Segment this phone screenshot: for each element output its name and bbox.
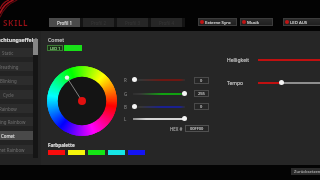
- staticText: Musik: [247, 19, 260, 25]
- staticText: 255: [198, 91, 205, 96]
- button[interactable]: LED AUS: [285, 18, 320, 26]
- staticText: Rainbow: [0, 106, 17, 112]
- staticText: 0: [200, 78, 203, 83]
- staticText: R: [124, 77, 127, 83]
- staticText: SKILL: [3, 17, 29, 28]
- button[interactable]: [258, 82, 320, 84]
- button[interactable]: Breathing: [0, 62, 34, 71]
- staticText: Beleuchtungseffekt: [0, 36, 38, 43]
- staticText: Swirling Rainbow: [0, 119, 26, 125]
- button[interactable]: Swirling Rainbow: [0, 117, 34, 126]
- staticText: Profil 2: [91, 20, 107, 26]
- button[interactable]: 255: [194, 90, 209, 97]
- staticText: Blinking: [0, 78, 17, 84]
- staticText: Comet: [1, 133, 15, 139]
- button[interactable]: Comet Rainbow: [0, 145, 34, 154]
- staticText: G: [124, 91, 128, 97]
- staticText: B: [124, 104, 127, 110]
- button[interactable]: 0: [194, 103, 209, 110]
- staticText: LED AUS: [290, 19, 308, 25]
- button[interactable]: [133, 118, 185, 120]
- staticText: Zurücksetzen: [294, 169, 320, 175]
- staticText: L: [124, 116, 127, 122]
- button[interactable]: 00FF00: [185, 125, 209, 132]
- staticText: Profil 4: [159, 20, 175, 26]
- button[interactable]: Static: [0, 48, 34, 57]
- button[interactable]: [133, 93, 185, 95]
- button[interactable]: Zurücksetzen: [291, 168, 320, 175]
- staticText: Helligkeit: [227, 57, 250, 64]
- staticText: Static: [2, 50, 14, 56]
- staticText: Comet Rainbow: [0, 147, 25, 153]
- button[interactable]: Cycle: [0, 90, 34, 99]
- button[interactable]: 0: [194, 77, 209, 84]
- staticText: Profil 3: [125, 20, 141, 26]
- staticText: Profil 1: [57, 20, 73, 26]
- button[interactable]: [133, 79, 185, 81]
- staticText: Externe Sync: [205, 19, 231, 25]
- staticText: 00FF00: [190, 126, 204, 131]
- staticText: HEX #: [170, 126, 183, 132]
- button[interactable]: Profil 1: [49, 18, 80, 27]
- staticText: Cycle: [3, 92, 14, 98]
- staticText: Farbpalette: [48, 142, 75, 148]
- staticText: 0: [200, 104, 203, 109]
- button[interactable]: Comet: [0, 131, 34, 140]
- button[interactable]: LED 1: [47, 45, 82, 51]
- button[interactable]: Blinking: [0, 76, 34, 85]
- button[interactable]: Externe Sync: [200, 18, 237, 26]
- button[interactable]: [133, 106, 185, 108]
- staticText: Breathing: [0, 64, 19, 70]
- button[interactable]: Musik: [242, 18, 273, 26]
- staticText: LED 1: [50, 46, 61, 51]
- staticText: Comet: [48, 36, 65, 43]
- button[interactable]: Rainbow: [0, 104, 34, 113]
- staticText: Tempo: [227, 80, 244, 87]
